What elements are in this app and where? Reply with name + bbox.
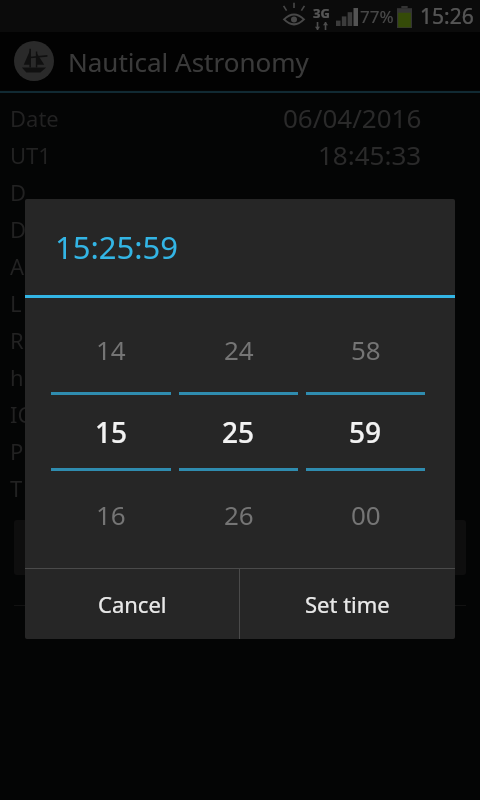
staticText: Date (10, 103, 59, 133)
staticText: Set time (305, 589, 390, 619)
staticText: 3G (313, 4, 330, 22)
staticText: D (10, 177, 27, 207)
staticText: 26 (224, 497, 254, 532)
staticText: 25 (222, 413, 255, 451)
staticText: L (10, 288, 22, 318)
staticText: 15:26 (420, 2, 474, 31)
staticText: h (10, 362, 24, 392)
button[interactable]: 15 (47, 395, 175, 468)
button[interactable]: 59 (302, 395, 429, 468)
button[interactable]: 00 (302, 491, 429, 537)
staticText: 58 (351, 332, 381, 367)
button[interactable]: 16 (47, 491, 175, 537)
staticText: 00 (351, 497, 381, 532)
staticText: D (10, 214, 27, 244)
button[interactable]: 26 (175, 491, 302, 537)
staticText: 06/04/2016 (283, 100, 422, 135)
button[interactable]: Calculate (14, 520, 466, 575)
staticText: 14 (96, 332, 126, 367)
staticText: A (10, 251, 25, 281)
staticText: 15 (95, 413, 128, 451)
staticText: 15:25:59 (55, 226, 179, 268)
button[interactable]: Set time (240, 569, 455, 639)
button[interactable]: Cancel (25, 569, 239, 639)
staticText: T (10, 473, 23, 503)
staticText: Cancel (98, 589, 167, 619)
staticText: IC (10, 399, 32, 429)
staticText: 24 (224, 332, 254, 367)
staticText: P (10, 436, 24, 466)
button[interactable]: 25 (175, 395, 302, 468)
staticText: 16 (96, 497, 126, 532)
staticText: 77% (360, 5, 394, 28)
button[interactable]: 58 (302, 326, 429, 372)
staticText: Nautical Astronomy (68, 44, 309, 79)
staticText: R (10, 325, 24, 355)
button[interactable]: 24 (175, 326, 302, 372)
staticText: 18:45:33 (318, 137, 422, 172)
staticText: 59 (349, 413, 382, 451)
staticText: UT1 (10, 140, 51, 170)
button[interactable]: 14 (47, 326, 175, 372)
